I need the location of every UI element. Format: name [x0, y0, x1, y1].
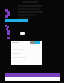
button[interactable]	[11, 41, 42, 65]
